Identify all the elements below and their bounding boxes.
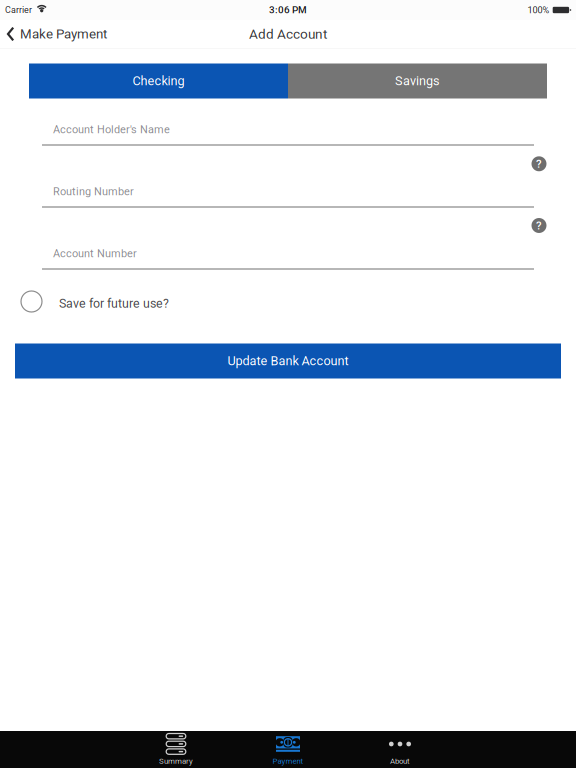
staticText: Savings — [395, 74, 440, 88]
button[interactable]: Account Number — [42, 238, 534, 269]
staticText: Carrier — [5, 5, 32, 15]
staticText: Routing Number — [53, 185, 134, 198]
button[interactable]: Update Bank Account — [15, 343, 561, 378]
button[interactable]: Summary — [120, 731, 232, 768]
button[interactable]: About — [344, 731, 456, 768]
button[interactable]: Account Holder's Name — [42, 114, 534, 145]
staticText: Save for future use? — [59, 296, 169, 311]
button[interactable]: Routing Number — [42, 176, 534, 207]
staticText: Account Number — [53, 247, 137, 260]
staticText: 3:06 PM — [269, 4, 307, 16]
staticText: Account Holder's Name — [53, 123, 170, 136]
staticText: Checking — [132, 74, 184, 88]
staticText: Summary — [159, 756, 193, 766]
button[interactable]: Back to Make Payment — [0, 20, 115, 48]
button[interactable]: Save for future use — [15, 285, 48, 318]
staticText: Add Account — [249, 26, 327, 42]
staticText: 100% — [527, 5, 549, 15]
button[interactable]: Checking — [29, 63, 288, 98]
staticText: ? — [536, 157, 542, 170]
staticText: Update Bank Account — [227, 354, 348, 368]
staticText: Payment — [272, 756, 303, 766]
button[interactable]: Help — [523, 148, 554, 179]
button[interactable]: Payment — [232, 731, 344, 768]
staticText: Make Payment — [20, 26, 107, 42]
staticText: ? — [536, 219, 542, 232]
staticText: About — [390, 756, 410, 766]
button[interactable]: Help — [523, 210, 554, 241]
button[interactable]: Savings — [288, 63, 547, 98]
